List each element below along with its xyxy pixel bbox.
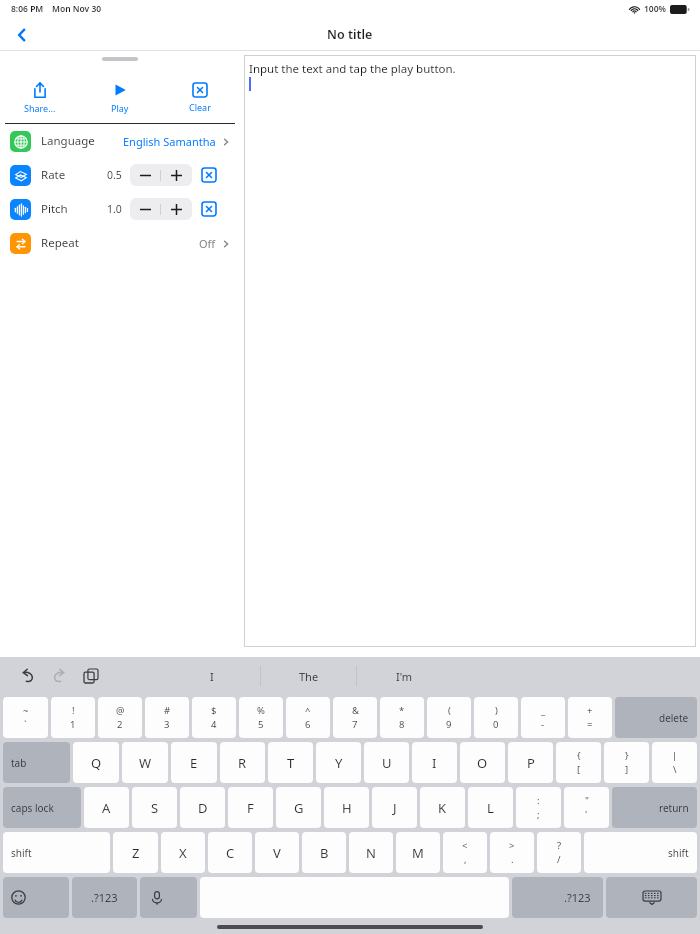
button[interactable]: N bbox=[349, 832, 393, 873]
button[interactable]: The bbox=[261, 657, 356, 695]
staticText: I bbox=[210, 669, 214, 684]
button[interactable]: Play bbox=[80, 77, 160, 119]
button[interactable]: } bbox=[604, 742, 649, 783]
staticText: Y bbox=[335, 754, 343, 772]
staticText: ( bbox=[448, 704, 451, 717]
button[interactable]: ( bbox=[427, 697, 471, 738]
button[interactable]: Reset Pitch bbox=[202, 202, 216, 216]
button[interactable]: % bbox=[239, 697, 283, 738]
button[interactable]: Undo bbox=[14, 663, 40, 689]
button[interactable]: Increase Rate bbox=[161, 164, 192, 186]
button[interactable]: P bbox=[508, 742, 553, 783]
staticText: ^ bbox=[305, 704, 311, 717]
button[interactable]: U bbox=[364, 742, 409, 783]
button[interactable]: " bbox=[564, 787, 609, 828]
button[interactable]: ) bbox=[474, 697, 518, 738]
button[interactable]: J bbox=[372, 787, 417, 828]
button[interactable]: Input the text and tap the play button. bbox=[244, 55, 696, 647]
button[interactable]: .?123 bbox=[72, 877, 137, 918]
button[interactable]: L bbox=[468, 787, 513, 828]
button[interactable]: W bbox=[122, 742, 168, 783]
button[interactable]: Paste bbox=[78, 663, 104, 689]
button[interactable]: { bbox=[556, 742, 601, 783]
staticText: [ bbox=[577, 763, 581, 776]
button[interactable]: & bbox=[333, 697, 377, 738]
button[interactable]: Language bbox=[0, 124, 240, 158]
button[interactable]: X bbox=[161, 832, 205, 873]
button[interactable]: Redo bbox=[46, 663, 72, 689]
button[interactable]: V bbox=[255, 832, 299, 873]
staticText: D bbox=[198, 799, 208, 817]
button[interactable]: T bbox=[268, 742, 313, 783]
staticText: Mon Nov 30 bbox=[52, 3, 102, 15]
staticText: \ bbox=[673, 763, 677, 776]
staticText: 100% bbox=[644, 3, 667, 15]
staticText: L bbox=[487, 799, 494, 817]
button[interactable]: Hide keyboard bbox=[606, 877, 697, 918]
button[interactable]: C bbox=[208, 832, 252, 873]
staticText: & bbox=[352, 704, 359, 717]
button[interactable]: O bbox=[460, 742, 505, 783]
staticText: 6 bbox=[305, 718, 311, 731]
button[interactable]: Reset Rate bbox=[202, 168, 216, 182]
button[interactable]: shift bbox=[3, 832, 110, 873]
button[interactable]: I'm bbox=[357, 657, 452, 695]
button[interactable]: ^ bbox=[286, 697, 330, 738]
button[interactable]: ? bbox=[537, 832, 581, 873]
button[interactable]: | bbox=[652, 742, 697, 783]
staticText: / bbox=[557, 853, 561, 866]
button[interactable]: A bbox=[84, 787, 129, 828]
button[interactable]: return bbox=[612, 787, 697, 828]
staticText: T bbox=[287, 754, 295, 772]
button[interactable]: Q bbox=[73, 742, 119, 783]
staticText: - bbox=[541, 718, 545, 731]
button[interactable]: K bbox=[420, 787, 465, 828]
button[interactable]: ! bbox=[51, 697, 95, 738]
staticText: ) bbox=[495, 704, 498, 717]
button[interactable]: < bbox=[443, 832, 487, 873]
button[interactable]: .?123 bbox=[512, 877, 603, 918]
button[interactable]: Repeat bbox=[0, 226, 240, 260]
staticText: 8:06 PM bbox=[11, 3, 44, 15]
button[interactable]: G bbox=[276, 787, 321, 828]
button[interactable]: > bbox=[490, 832, 534, 873]
button[interactable]: E bbox=[171, 742, 217, 783]
button[interactable]: ~ bbox=[3, 697, 48, 738]
button[interactable]: Clear bbox=[160, 77, 240, 119]
button[interactable]: # bbox=[145, 697, 189, 738]
button[interactable]: Y bbox=[316, 742, 361, 783]
button[interactable]: shift bbox=[584, 832, 697, 873]
button[interactable]: D bbox=[180, 787, 225, 828]
button[interactable]: Emoji bbox=[3, 877, 69, 918]
button[interactable]: S bbox=[132, 787, 177, 828]
button[interactable]: I bbox=[164, 657, 260, 695]
button[interactable]: delete bbox=[615, 697, 697, 738]
staticText: S bbox=[151, 799, 159, 817]
button[interactable]: caps lock bbox=[3, 787, 81, 828]
button[interactable]: + bbox=[568, 697, 612, 738]
button[interactable]: B bbox=[302, 832, 346, 873]
button[interactable]: Back bbox=[4, 18, 40, 51]
button[interactable]: Share... bbox=[0, 77, 80, 119]
button[interactable]: Dictate bbox=[140, 877, 197, 918]
button[interactable]: I bbox=[412, 742, 457, 783]
staticText: No title bbox=[327, 26, 373, 43]
button[interactable]: : bbox=[516, 787, 561, 828]
button[interactable]: Increase Pitch bbox=[161, 198, 192, 220]
button[interactable]: Decrease Pitch bbox=[130, 198, 160, 220]
button[interactable]: F bbox=[228, 787, 273, 828]
staticText: 0.5 bbox=[107, 168, 122, 182]
button[interactable]: _ bbox=[521, 697, 565, 738]
button[interactable]: M bbox=[396, 832, 440, 873]
staticText: R bbox=[238, 754, 247, 772]
button[interactable]: Z bbox=[113, 832, 158, 873]
button[interactable]: H bbox=[324, 787, 369, 828]
button[interactable]: @ bbox=[98, 697, 142, 738]
button[interactable]: $ bbox=[192, 697, 236, 738]
button[interactable]: tab bbox=[3, 742, 70, 783]
button[interactable]: * bbox=[380, 697, 424, 738]
button[interactable]: R bbox=[220, 742, 265, 783]
staticText: .?123 bbox=[91, 890, 118, 905]
button[interactable]: Decrease Rate bbox=[130, 164, 160, 186]
